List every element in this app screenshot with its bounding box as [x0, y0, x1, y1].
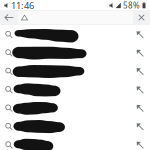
staticText: 58% — [121, 0, 142, 11]
button[interactable]: Search suggestion — [0, 81, 150, 99]
button[interactable]: Clear text — [0, 10, 15, 25]
button[interactable]: Search suggestion — [0, 136, 150, 150]
button[interactable]: Search suggestion — [0, 25, 150, 44]
staticText: 11:46 — [9, 0, 34, 12]
button[interactable]: Search suggestion — [0, 117, 150, 136]
button[interactable]: Search suggestion — [0, 99, 150, 117]
button[interactable]: Site information: Not secure — [0, 10, 13, 25]
button[interactable]: Back — [0, 10, 18, 25]
button[interactable]: Search suggestion — [0, 62, 150, 81]
button[interactable]: Search suggestion — [0, 44, 150, 62]
